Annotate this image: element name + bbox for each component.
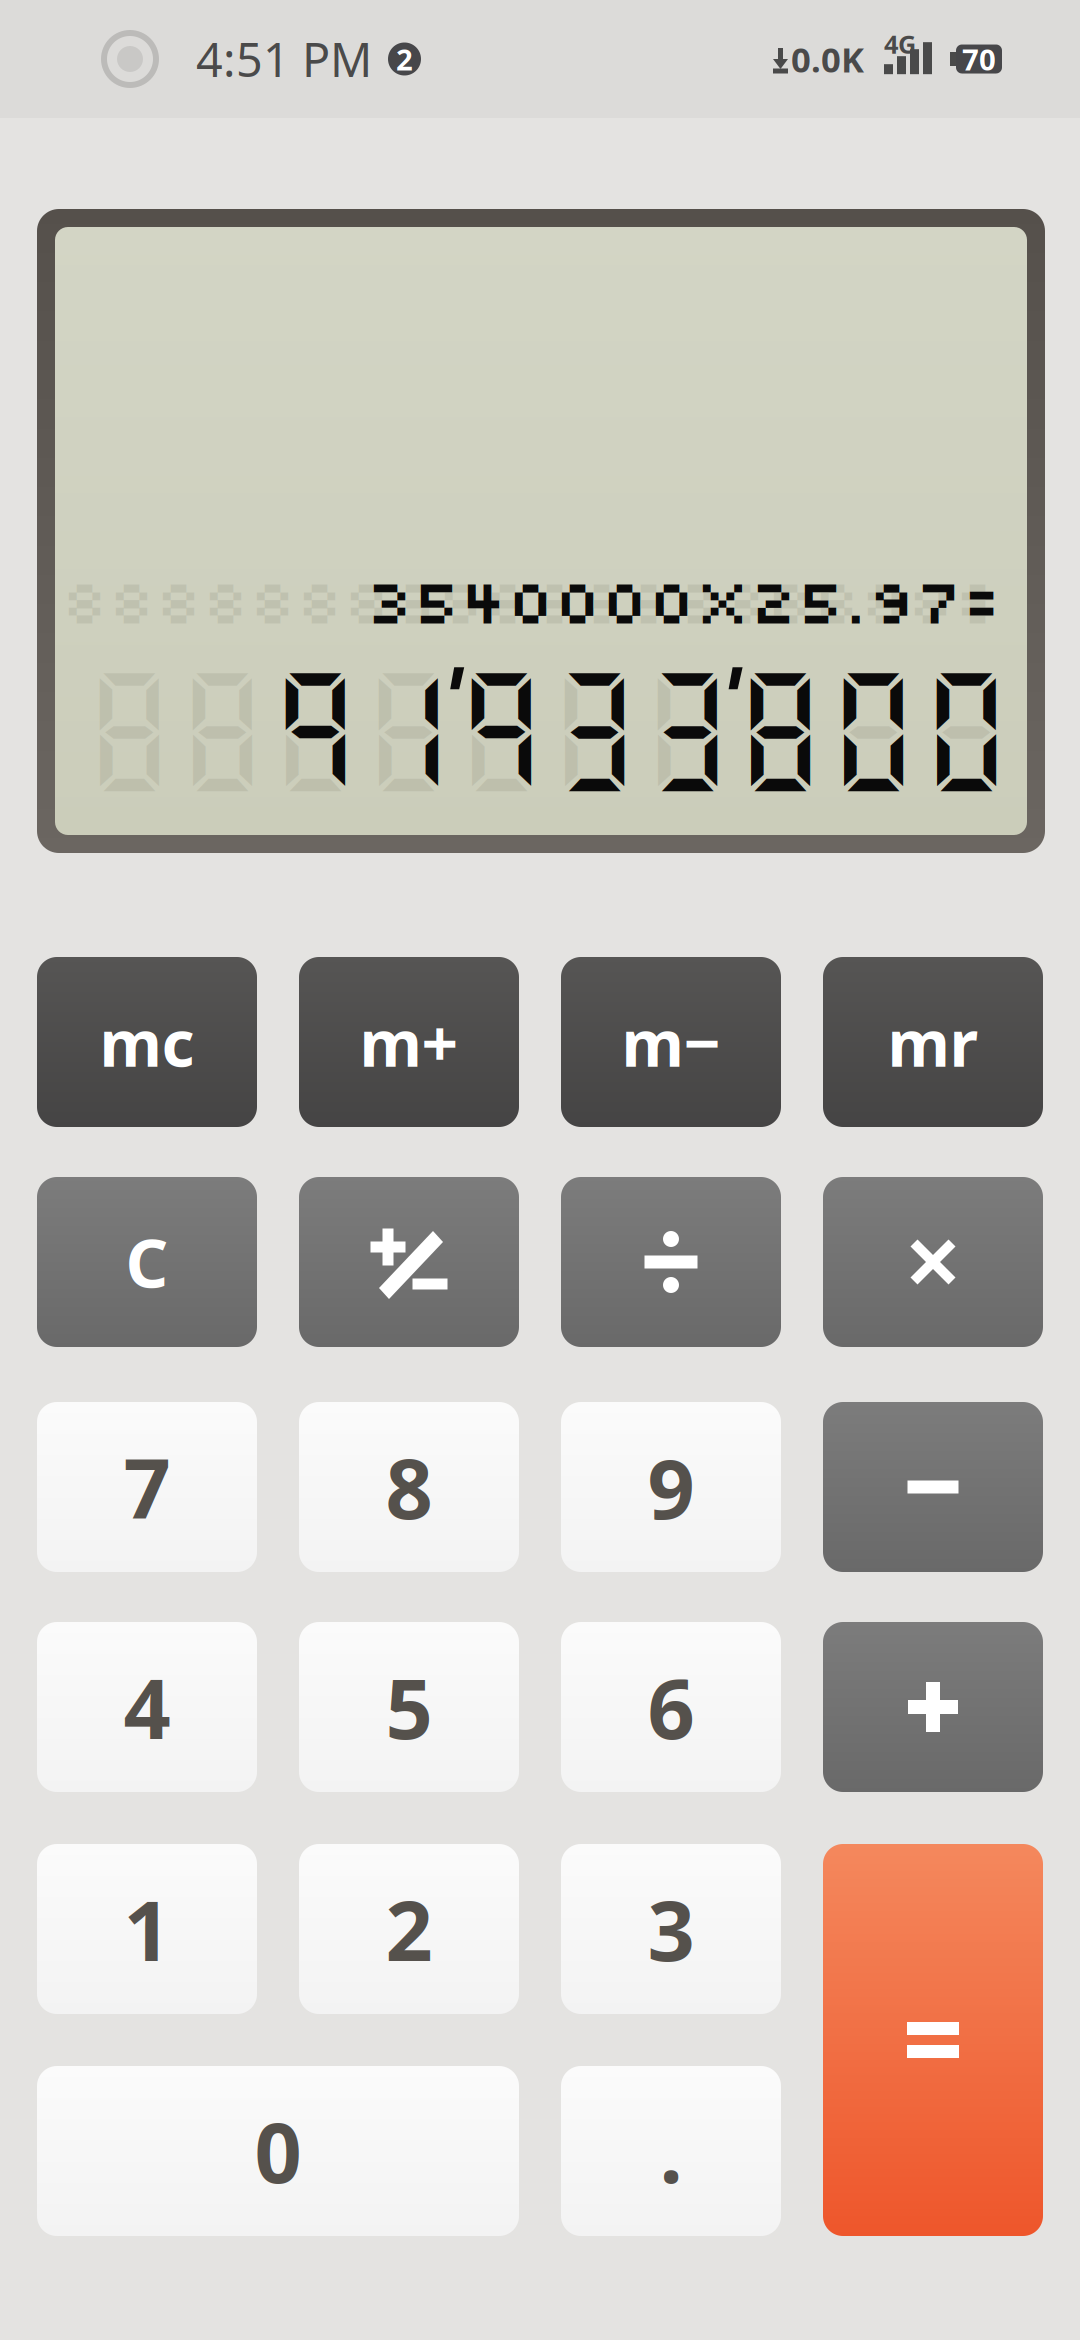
staticText: 1	[123, 1874, 170, 1984]
staticText: m−	[621, 999, 720, 1084]
button[interactable]: 5	[299, 1622, 519, 1792]
button[interactable]: 7	[37, 1402, 257, 1572]
staticText: 4:51 PM	[196, 28, 372, 90]
staticText: 88888888888888888888	[61, 559, 1001, 639]
staticText: 8	[385, 1432, 432, 1542]
button[interactable]: 2	[299, 1844, 519, 2014]
staticText: 8888888888	[83, 653, 1013, 803]
staticText: 9	[647, 1432, 694, 1542]
staticText: 5	[385, 1652, 432, 1762]
staticText: m+	[359, 999, 458, 1084]
staticText: mc	[99, 999, 194, 1084]
staticText: C	[125, 1218, 168, 1306]
staticText: 6	[647, 1652, 694, 1762]
staticText: 4G	[884, 27, 916, 61]
button[interactable]: 8	[299, 1402, 519, 1572]
staticText: 3	[647, 1874, 694, 1984]
staticText: .	[659, 2096, 682, 2206]
button[interactable]: Memory add	[299, 957, 519, 1127]
button[interactable]: Minus	[823, 1402, 1043, 1572]
button[interactable]: 1	[37, 1844, 257, 2014]
button[interactable]: 0	[37, 2066, 519, 2236]
button[interactable]: 4	[37, 1622, 257, 1792]
button[interactable]: Divide	[561, 1177, 781, 1347]
button[interactable]: Memory recall	[823, 957, 1043, 1127]
button[interactable]: Clear	[37, 1177, 257, 1347]
staticText: 91933800	[269, 653, 1013, 803]
staticText: 2	[396, 39, 413, 78]
staticText: 70	[962, 39, 996, 78]
staticText: 0	[254, 2096, 301, 2206]
button[interactable]: Plus	[823, 1622, 1043, 1792]
staticText: 2	[385, 1874, 432, 1984]
staticText: 0.0K	[791, 36, 864, 82]
button[interactable]: Memory subtract	[561, 957, 781, 1127]
button[interactable]: Equals	[823, 1844, 1043, 2236]
button[interactable]: Plus minus	[299, 1177, 519, 1347]
button[interactable]: 9	[561, 1402, 781, 1572]
button[interactable]: Decimal point	[561, 2066, 781, 2236]
staticText: 7	[123, 1432, 170, 1542]
staticText: 4	[123, 1652, 170, 1762]
button[interactable]: 6	[561, 1622, 781, 1792]
staticText: mr	[887, 999, 978, 1084]
button[interactable]: 3	[561, 1844, 781, 2014]
staticText: 3540000X25.97=	[366, 559, 1001, 639]
button[interactable]: Memory clear	[37, 957, 257, 1127]
button[interactable]: Multiply	[823, 1177, 1043, 1347]
